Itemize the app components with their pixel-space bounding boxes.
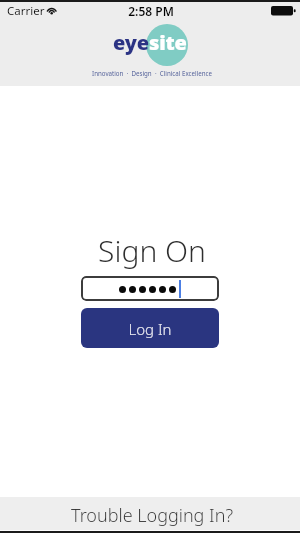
button[interactable]: Trouble Logging In? bbox=[0, 497, 300, 533]
button[interactable]: Log In bbox=[81, 308, 219, 348]
staticText: Innovation · Design · Clinical Excellenc… bbox=[2, 69, 300, 77]
staticText: Sign On bbox=[2, 230, 300, 271]
staticText: 2:58 PM bbox=[1, 3, 300, 19]
staticText: Log In bbox=[81, 319, 219, 339]
staticText: Carrier bbox=[7, 3, 45, 19]
button[interactable]: Password bbox=[81, 276, 219, 301]
staticText: Trouble Logging In? bbox=[2, 503, 300, 528]
staticText: eye bbox=[113, 29, 149, 56]
staticText: site bbox=[149, 29, 187, 56]
